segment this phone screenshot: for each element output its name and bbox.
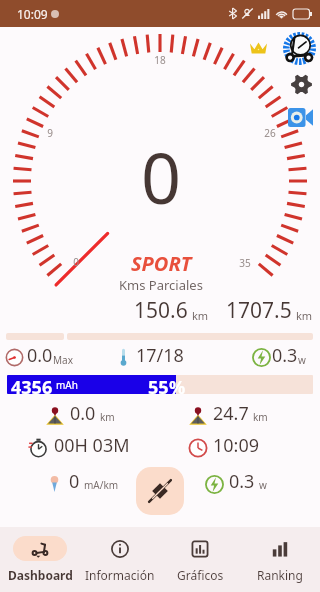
button[interactable]: Settings	[291, 74, 312, 95]
staticText: 35	[239, 256, 251, 270]
staticText: 0	[69, 469, 80, 494]
staticText: w	[298, 353, 306, 367]
staticText: mA/km	[84, 478, 119, 492]
staticText: 17/18	[136, 343, 184, 368]
staticText: Información	[85, 567, 155, 583]
staticText: 24.7	[213, 401, 249, 426]
button[interactable]: Record video	[288, 108, 313, 127]
staticText: 00H 03M	[54, 433, 130, 458]
staticText: 150.6	[134, 296, 188, 325]
staticText: km	[192, 308, 209, 323]
button[interactable]: Gráficos	[160, 527, 240, 592]
staticText: 0.3	[272, 343, 298, 368]
staticText: Dashboard	[8, 567, 73, 583]
staticText: 0	[73, 255, 79, 269]
staticText: %	[169, 375, 186, 394]
staticText: km	[100, 410, 115, 424]
staticText: mAh	[56, 378, 78, 392]
staticText: 10:09	[213, 433, 260, 458]
staticText: 18	[154, 53, 166, 67]
staticText: 10:09	[17, 6, 48, 22]
staticText: 4356	[11, 375, 53, 394]
staticText: Gráficos	[177, 567, 224, 583]
staticText: Kms Parciales	[119, 276, 203, 294]
staticText: 55	[148, 375, 169, 394]
staticText: 0.3	[229, 469, 255, 494]
staticText: 1707.5	[226, 296, 292, 325]
staticText: 26	[264, 126, 276, 140]
staticText: Max	[53, 353, 73, 367]
staticText: km	[296, 308, 313, 323]
button[interactable]: Dashboard	[0, 527, 80, 592]
button[interactable]: Ranking	[240, 527, 320, 592]
staticText: 0.0	[27, 343, 53, 368]
button[interactable]: Scooter status	[283, 32, 316, 65]
staticText: 0.0	[70, 401, 96, 426]
staticText: 9	[47, 126, 53, 140]
staticText: 0	[141, 129, 182, 224]
button[interactable]: Información	[80, 527, 160, 592]
staticText: w	[259, 478, 267, 492]
staticText: km	[253, 410, 268, 424]
staticText: SPORT	[131, 250, 192, 277]
button[interactable]: Connect	[136, 467, 184, 515]
staticText: Ranking	[257, 567, 303, 583]
